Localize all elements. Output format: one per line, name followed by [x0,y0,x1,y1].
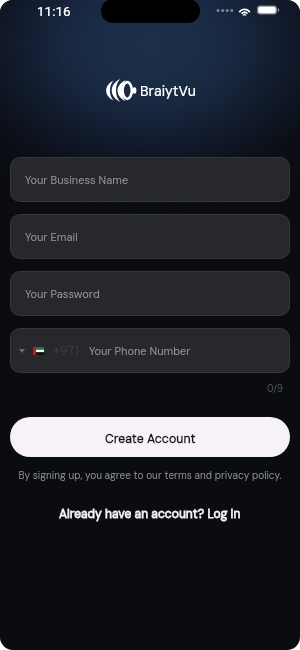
staticText: 11:16 [37,3,71,19]
button[interactable]: Your Email [10,214,290,259]
staticText: By signing up, you agree to our terms an… [0,469,300,482]
button[interactable]: Select country code [10,328,290,373]
staticText: Create Account [105,431,196,447]
staticText: BraiytVu [140,82,196,100]
button[interactable]: Your Password [10,271,290,316]
button[interactable]: Already have an account? Log In [59,506,241,522]
staticText: Your Email [25,230,78,244]
staticText: Your Password [25,287,100,301]
staticText: Your Business Name [25,173,129,187]
staticText: +971 [53,343,79,359]
staticText: Your Phone Number [89,344,191,358]
staticText: 0/9 [0,382,283,395]
button[interactable]: Create Account [10,417,290,457]
button[interactable]: Your Business Name [10,157,290,202]
other: Select country code [18,345,26,357]
